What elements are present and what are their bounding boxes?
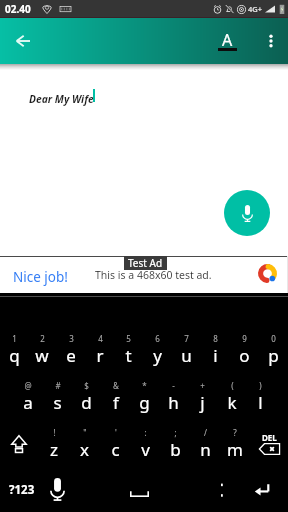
staticText: f — [113, 391, 119, 414]
staticText: ? — [233, 427, 237, 438]
staticText: This is a 468x60 test ad. — [95, 268, 212, 282]
staticText: * — [142, 380, 147, 391]
button[interactable]: 5 — [114, 326, 143, 373]
button[interactable]: ; — [160, 420, 190, 467]
staticText: 2 — [40, 333, 45, 344]
button[interactable]: Delete — [250, 420, 288, 467]
staticText: z — [50, 438, 58, 461]
button[interactable]: 1 — [0, 326, 28, 373]
staticText: ) — [259, 380, 262, 391]
button[interactable]: More options — [257, 27, 284, 55]
button[interactable]: 3 — [56, 326, 85, 373]
staticText: r — [96, 344, 104, 367]
staticText: i — [213, 344, 218, 367]
staticText: ; — [174, 427, 177, 438]
button[interactable]: Space — [71, 467, 208, 512]
button[interactable]: 2 — [28, 326, 56, 373]
button[interactable]: 4 — [85, 326, 114, 373]
button[interactable]: " — [69, 420, 100, 467]
staticText: m — [227, 438, 243, 461]
staticText: A — [222, 29, 233, 51]
staticText: w — [35, 344, 49, 367]
staticText: + — [200, 380, 205, 391]
staticText: 7 — [184, 333, 189, 344]
staticText: - — [172, 380, 175, 391]
staticText: s — [53, 391, 62, 414]
staticText: x — [80, 438, 89, 461]
staticText: a — [23, 391, 33, 414]
staticText: 02.40 — [5, 2, 31, 16]
staticText: t — [125, 344, 132, 367]
staticText: p — [268, 344, 279, 367]
staticText: 4 — [98, 333, 103, 344]
button[interactable]: 7 — [172, 326, 201, 373]
staticText: ! — [53, 427, 56, 438]
staticText: # — [55, 380, 61, 391]
button[interactable]: 9 — [230, 326, 259, 373]
staticText: o — [239, 344, 250, 367]
button[interactable]: ' — [100, 420, 130, 467]
button[interactable]: + — [188, 373, 217, 420]
staticText: 0 — [271, 333, 276, 344]
button[interactable]: Voice input — [224, 190, 270, 236]
staticText: q — [9, 344, 20, 367]
button[interactable]: Back — [9, 27, 37, 55]
button[interactable]: Shift — [0, 420, 38, 467]
button[interactable] — [208, 467, 235, 512]
staticText: / — [204, 427, 207, 438]
staticText: h — [168, 391, 179, 414]
button[interactable]: # — [43, 373, 72, 420]
staticText: ?123 — [9, 482, 35, 498]
staticText: 9 — [242, 333, 247, 344]
staticText: & — [113, 380, 119, 391]
button[interactable]: 6 — [143, 326, 172, 373]
staticText: e — [66, 344, 76, 367]
button[interactable]: $ — [72, 373, 101, 420]
button[interactable]: ?123 — [0, 467, 43, 512]
button[interactable]: Voice input — [43, 467, 71, 512]
staticText: j — [200, 391, 205, 414]
staticText: 6 — [155, 333, 160, 344]
staticText: : — [144, 427, 147, 438]
button[interactable]: & — [101, 373, 130, 420]
staticText: 8 — [213, 333, 218, 344]
staticText: Dear My Wife — [29, 92, 94, 106]
staticText: v — [141, 438, 150, 461]
staticText: g — [139, 391, 150, 414]
staticText: b — [170, 438, 181, 461]
button[interactable]: ( — [217, 373, 246, 420]
button[interactable]: / — [190, 420, 220, 467]
staticText: c — [111, 438, 120, 461]
button[interactable]: ! — [38, 420, 69, 467]
button[interactable]: : — [130, 420, 160, 467]
staticText: DEL — [262, 432, 277, 443]
staticText: ' — [115, 427, 117, 438]
button[interactable]: ) — [246, 373, 275, 420]
staticText: y — [153, 344, 162, 367]
button[interactable]: 0 — [259, 326, 288, 373]
staticText: l — [258, 391, 263, 414]
staticText: Test Ad — [128, 256, 163, 270]
staticText: 3 — [69, 333, 74, 344]
button[interactable]: Enter — [235, 467, 288, 512]
staticText: @ — [24, 380, 32, 391]
staticText: u — [181, 344, 192, 367]
staticText: ( — [231, 380, 234, 391]
button[interactable]: - — [159, 373, 188, 420]
staticText: k — [227, 391, 237, 414]
staticText: Nice job! — [13, 268, 68, 286]
staticText: 1 — [12, 333, 17, 344]
staticText: 4G+ — [248, 4, 263, 14]
staticText: " — [83, 427, 87, 438]
staticText: 5 — [126, 333, 131, 344]
staticText: $ — [84, 380, 89, 391]
staticText: n — [200, 438, 211, 461]
staticText: d — [81, 391, 92, 414]
button[interactable]: Format text — [209, 23, 246, 55]
button[interactable]: ? — [220, 420, 250, 467]
button[interactable]: 8 — [201, 326, 230, 373]
button[interactable]: * — [130, 373, 159, 420]
button[interactable]: @ — [13, 373, 43, 420]
